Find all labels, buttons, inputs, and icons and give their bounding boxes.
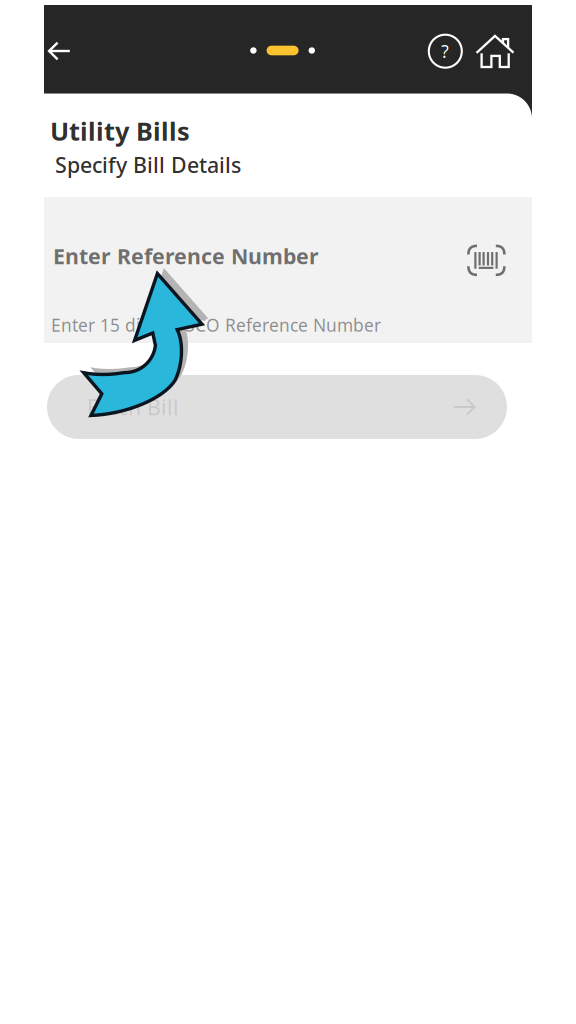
- button[interactable]: Back: [37, 29, 81, 73]
- button[interactable]: Help: [423, 29, 467, 73]
- staticText: Fetch Bill: [87, 393, 179, 421]
- staticText: Enter 15 digit LESCO Reference Number: [51, 313, 381, 336]
- staticText: ?: [441, 40, 449, 63]
- button[interactable]: Scan barcode: [462, 235, 511, 277]
- button[interactable]: Home: [473, 29, 517, 73]
- staticText: Specify Bill Details: [55, 151, 241, 179]
- staticText: Enter Reference Number: [53, 242, 319, 270]
- button[interactable]: Fetch Bill: [47, 375, 507, 439]
- staticText: Utility Bills: [50, 114, 190, 148]
